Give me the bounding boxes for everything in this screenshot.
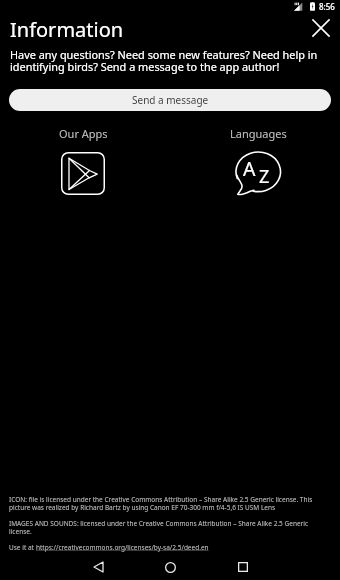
button[interactable]: Back (80, 554, 116, 580)
staticText: ICON: file is licensed under the Creativ… (9, 495, 315, 512)
staticText: Languages (230, 126, 287, 141)
staticText: 8:56 (319, 1, 335, 12)
staticText: Z (259, 164, 270, 189)
staticText: IMAGES AND SOUNDS: licensed under the Cr… (9, 519, 315, 536)
staticText: A (243, 155, 256, 182)
button[interactable]: Send a message (9, 89, 331, 111)
button[interactable]: Recents (225, 554, 261, 580)
button[interactable]: Close (307, 14, 335, 42)
staticText: Have any questions? Need some new featur… (10, 47, 318, 74)
staticText: Send a message (132, 93, 209, 107)
staticText: Use it at (9, 543, 36, 552)
button[interactable]: Home (152, 554, 188, 580)
staticText: Our Apps (59, 126, 108, 141)
button[interactable]: Our Apps (0, 126, 168, 195)
button[interactable]: https://creativecommons.org/licenses/by-… (36, 543, 209, 552)
staticText: Information (10, 16, 124, 43)
button[interactable]: Languages (173, 126, 340, 196)
